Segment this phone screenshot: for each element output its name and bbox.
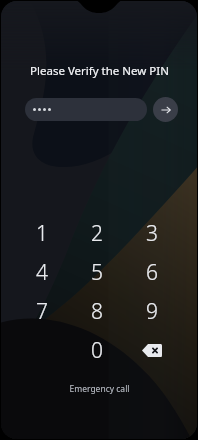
staticText: 9 xyxy=(146,297,158,326)
button[interactable]: 6 xyxy=(124,253,179,292)
staticText: 7 xyxy=(36,297,48,326)
button[interactable]: 5 xyxy=(69,253,124,292)
staticText: 3 xyxy=(146,219,158,248)
button[interactable]: 7 xyxy=(15,292,69,331)
button[interactable]: 0 xyxy=(69,331,124,370)
staticText: 4 xyxy=(36,258,48,287)
staticText: 0 xyxy=(91,336,103,365)
staticText: 6 xyxy=(146,258,158,287)
staticText: 2 xyxy=(91,219,103,248)
staticText: 1 xyxy=(36,219,48,248)
staticText: Emergency call xyxy=(69,383,130,395)
button[interactable]: Backspace xyxy=(124,331,179,370)
button[interactable]: 4 xyxy=(15,253,69,292)
staticText: 5 xyxy=(91,258,103,287)
staticText: Please Verify the New PIN xyxy=(30,63,169,79)
staticText: 8 xyxy=(91,297,103,326)
button[interactable]: 1 xyxy=(15,214,69,253)
button[interactable]: 3 xyxy=(124,214,179,253)
button[interactable]: 2 xyxy=(69,214,124,253)
button[interactable]: Emergency call xyxy=(59,380,140,398)
button[interactable]: Submit PIN xyxy=(153,97,178,122)
button[interactable]: 9 xyxy=(124,292,179,331)
button[interactable] xyxy=(25,98,147,121)
button[interactable]: 8 xyxy=(69,292,124,331)
